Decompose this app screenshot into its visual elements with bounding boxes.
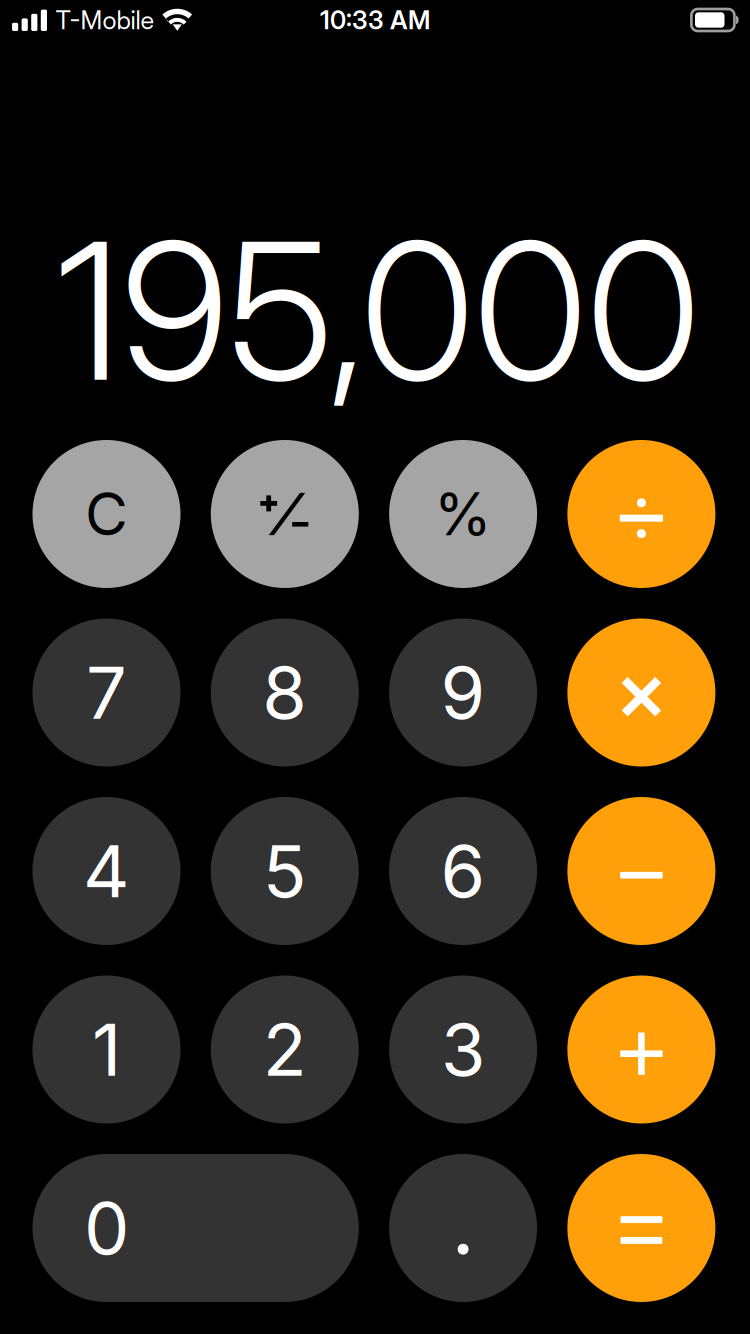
button[interactable]: %	[389, 440, 537, 588]
button[interactable]: 4	[32, 797, 180, 945]
button[interactable]: 6	[389, 797, 537, 945]
staticText: 3	[441, 1006, 485, 1093]
button[interactable]: 7	[32, 618, 180, 766]
staticText: 5	[263, 827, 307, 914]
staticText: 9	[441, 649, 486, 736]
button[interactable]: Plus	[567, 975, 715, 1123]
staticText: 7	[86, 649, 127, 736]
button[interactable]: 0	[32, 1154, 359, 1302]
staticText: T-Mobile	[55, 5, 154, 35]
staticText: 0	[84, 1184, 129, 1271]
staticText: C	[85, 478, 128, 549]
button[interactable]: 1	[32, 975, 180, 1123]
staticText: 1	[92, 1006, 121, 1093]
button[interactable]: Minus	[567, 797, 715, 945]
staticText: 10:33 AM	[320, 5, 430, 35]
button[interactable]: 2	[211, 975, 359, 1123]
button[interactable]: 9	[389, 618, 537, 766]
button[interactable]: Decimal point	[389, 1154, 537, 1302]
staticText: 6	[441, 827, 486, 914]
staticText: 2	[263, 1006, 307, 1093]
staticText: 4	[83, 827, 130, 914]
button[interactable]: Plus Minus	[211, 440, 359, 588]
button[interactable]: Equals	[567, 1154, 715, 1302]
button[interactable]: 3	[389, 975, 537, 1123]
staticText: 8	[262, 649, 307, 736]
button[interactable]: Multiply	[567, 618, 715, 766]
staticText: %	[434, 478, 492, 549]
button[interactable]: C	[32, 440, 180, 588]
button[interactable]: 5	[211, 797, 359, 945]
button[interactable]: Divide	[567, 440, 715, 588]
button[interactable]: 8	[211, 618, 359, 766]
staticText: 195,000	[56, 196, 700, 426]
